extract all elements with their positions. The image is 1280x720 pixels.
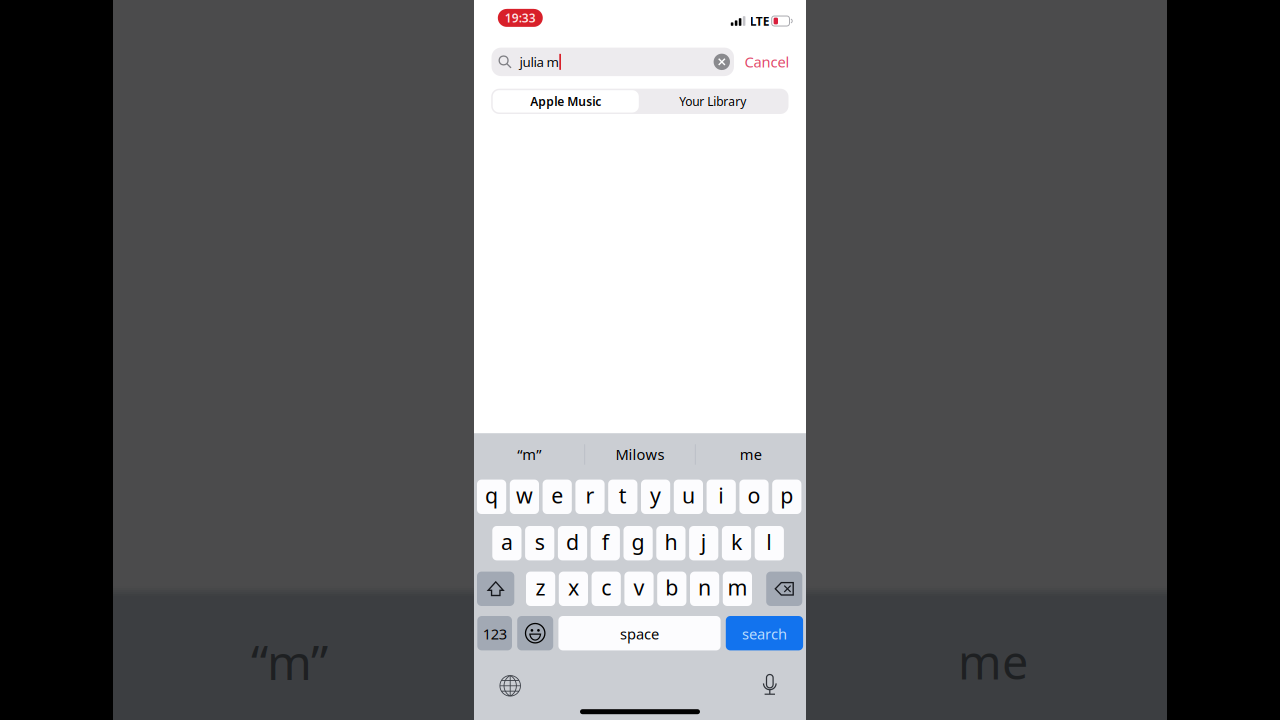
button[interactable]: o bbox=[739, 480, 769, 514]
button[interactable]: Dictate bbox=[762, 673, 778, 697]
button[interactable]: h bbox=[656, 526, 685, 560]
staticText: x bbox=[568, 573, 579, 601]
staticText: m bbox=[727, 573, 747, 601]
button[interactable]: c bbox=[592, 572, 621, 606]
staticText: r bbox=[585, 481, 594, 509]
staticText: v bbox=[633, 573, 644, 601]
staticText: me bbox=[740, 444, 762, 464]
staticText: julia m bbox=[519, 53, 558, 71]
button[interactable]: i bbox=[707, 480, 736, 514]
button[interactable]: d bbox=[558, 526, 587, 560]
staticText: me bbox=[958, 630, 1028, 692]
button[interactable]: r bbox=[575, 480, 605, 514]
button[interactable]: l bbox=[755, 526, 784, 560]
staticText: 19:33 bbox=[505, 10, 536, 26]
button[interactable]: me bbox=[695, 430, 806, 472]
staticText: “m” bbox=[251, 630, 328, 693]
button[interactable]: p bbox=[772, 480, 801, 514]
staticText: Cancel bbox=[744, 52, 789, 72]
button[interactable]: u bbox=[674, 480, 703, 514]
button[interactable]: b bbox=[657, 572, 686, 606]
staticText: c bbox=[601, 573, 611, 601]
button[interactable]: s bbox=[525, 526, 554, 560]
staticText: b bbox=[665, 573, 678, 601]
button[interactable]: n bbox=[690, 572, 719, 606]
staticText: z bbox=[536, 573, 546, 601]
staticText: w bbox=[516, 481, 533, 509]
button[interactable]: “m” bbox=[474, 430, 585, 472]
button[interactable]: a bbox=[492, 526, 521, 560]
staticText: d bbox=[566, 527, 579, 556]
staticText: Your Library bbox=[679, 93, 746, 109]
button[interactable]: e bbox=[543, 480, 572, 514]
staticText: “m” bbox=[517, 444, 541, 464]
button[interactable]: Emoji bbox=[517, 616, 553, 650]
staticText: 123 bbox=[483, 624, 507, 643]
staticText: e bbox=[551, 481, 563, 509]
button[interactable]: Cancel bbox=[736, 48, 798, 76]
staticText: space bbox=[620, 624, 659, 643]
staticText: h bbox=[664, 527, 677, 556]
button[interactable]: Next keyboard bbox=[499, 675, 521, 697]
staticText: y bbox=[650, 481, 661, 509]
button[interactable]: y bbox=[641, 480, 670, 514]
staticText: t bbox=[619, 481, 627, 509]
button[interactable]: Your Library bbox=[639, 90, 787, 112]
staticText: n bbox=[698, 573, 711, 601]
button[interactable]: Shift bbox=[477, 572, 514, 606]
button[interactable]: m bbox=[723, 572, 752, 606]
button[interactable]: Apple Music bbox=[493, 90, 639, 112]
staticText: LTE bbox=[750, 13, 770, 29]
button[interactable]: f bbox=[591, 526, 620, 560]
button[interactable]: j bbox=[689, 526, 718, 560]
staticText: g bbox=[632, 527, 645, 556]
button[interactable]: 19:33 bbox=[498, 9, 543, 27]
staticText: o bbox=[747, 481, 760, 509]
staticText: j bbox=[701, 527, 707, 556]
button[interactable]: g bbox=[623, 526, 653, 560]
staticText: l bbox=[766, 527, 772, 556]
staticText: search bbox=[742, 624, 787, 643]
staticText: q bbox=[485, 481, 498, 509]
button[interactable]: space bbox=[558, 616, 721, 650]
button[interactable]: Milows bbox=[585, 430, 695, 472]
button[interactable]: Delete bbox=[766, 572, 802, 606]
staticText: u bbox=[682, 481, 695, 509]
staticText: p bbox=[780, 481, 793, 509]
staticText: a bbox=[501, 527, 513, 556]
staticText: i bbox=[718, 481, 724, 509]
button[interactable]: Clear text bbox=[714, 54, 730, 70]
button[interactable]: julia m bbox=[491, 48, 734, 76]
button[interactable]: z bbox=[526, 572, 555, 606]
staticText: Milows bbox=[615, 444, 664, 464]
button[interactable]: q bbox=[477, 480, 506, 514]
button[interactable]: v bbox=[624, 572, 654, 606]
button[interactable]: t bbox=[608, 480, 637, 514]
button[interactable]: 123 bbox=[477, 616, 512, 650]
staticText: s bbox=[535, 527, 545, 556]
button[interactable]: k bbox=[722, 526, 751, 560]
button[interactable]: w bbox=[510, 480, 539, 514]
staticText: k bbox=[731, 527, 742, 556]
button[interactable]: x bbox=[559, 572, 588, 606]
staticText: Apple Music bbox=[530, 93, 601, 109]
staticText: f bbox=[602, 527, 609, 556]
button[interactable]: search bbox=[726, 616, 803, 650]
